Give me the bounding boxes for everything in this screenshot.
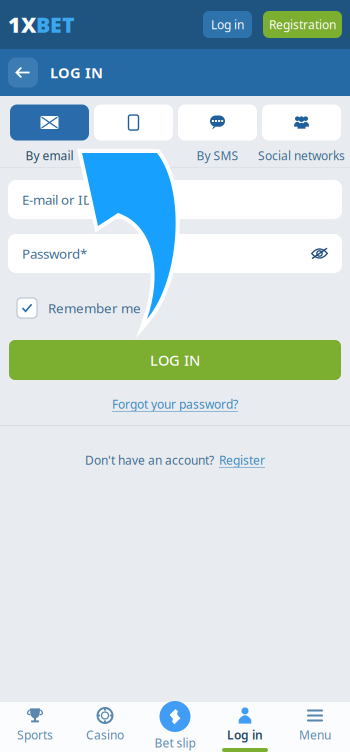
- staticText: LOG IN: [50, 63, 103, 82]
- button[interactable]: By email: [10, 104, 89, 163]
- button[interactable]: Back: [8, 57, 38, 87]
- staticText: E-mail or ID*: [22, 191, 100, 208]
- button[interactable]: Casino: [70, 702, 140, 752]
- button[interactable]: By SMS: [178, 104, 257, 163]
- staticText: By SMS: [196, 147, 238, 163]
- staticText: BET: [36, 10, 75, 39]
- staticText: Remember me: [48, 299, 141, 317]
- button[interactable]: Register: [219, 452, 265, 468]
- button[interactable]: Log in: [210, 702, 280, 752]
- staticText: Forgot your password?: [112, 396, 238, 412]
- staticText: By email: [25, 147, 73, 163]
- staticText: Bet slip: [154, 735, 195, 751]
- button[interactable]: Bet slip: [140, 702, 210, 752]
- button[interactable]: Registration: [263, 11, 342, 38]
- staticText: 1X: [8, 10, 36, 39]
- button[interactable]: Social networks: [262, 104, 341, 163]
- staticText: LOG IN: [150, 350, 200, 370]
- staticText: Log in: [211, 16, 244, 32]
- button[interactable]: Menu: [280, 702, 350, 752]
- button[interactable]: LOG IN: [9, 340, 341, 380]
- staticText: Log in: [227, 727, 263, 743]
- button[interactable]: Log in: [203, 11, 252, 38]
- staticText: Menu: [299, 727, 331, 743]
- staticText: Sports: [17, 727, 53, 743]
- staticText: Registration: [269, 16, 336, 32]
- staticText: Social networks: [258, 147, 345, 163]
- staticText: Register: [219, 452, 265, 468]
- staticText: Password*: [22, 245, 87, 262]
- button[interactable]: Show password: [311, 247, 328, 260]
- button[interactable]: [94, 104, 173, 163]
- staticText: Don't have an account?: [85, 452, 214, 468]
- button[interactable]: Remember me: [17, 298, 197, 318]
- button[interactable]: Sports: [0, 702, 70, 752]
- button[interactable]: Forgot your password?: [112, 396, 238, 412]
- staticText: Casino: [86, 727, 124, 743]
